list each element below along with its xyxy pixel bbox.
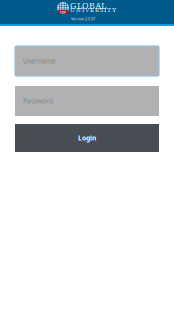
staticText: Login (78, 134, 96, 142)
staticText: Username (23, 57, 56, 65)
staticText: BETA (60, 10, 66, 13)
staticText: Password (23, 97, 53, 105)
staticText: Version 2.0.37 (71, 16, 95, 21)
staticText: G L O B A L (70, 0, 106, 12)
staticText: U N I V E R S I T Y (70, 6, 116, 14)
button[interactable]: Login (15, 124, 159, 152)
